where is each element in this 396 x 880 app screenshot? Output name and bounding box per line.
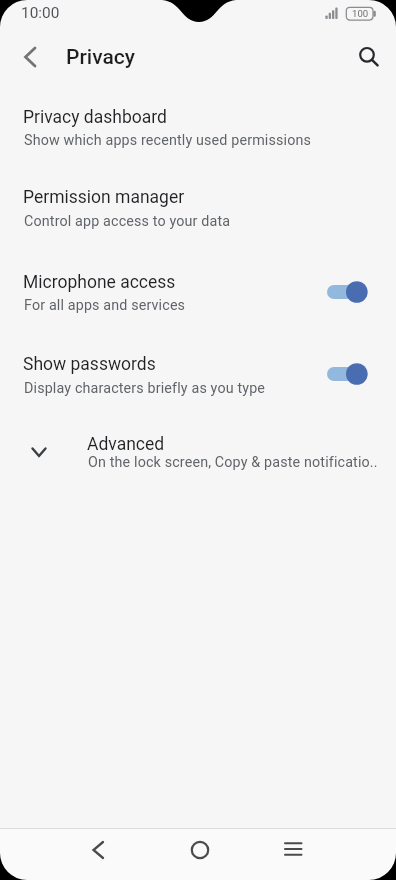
button[interactable] [0, 428, 396, 486]
staticText: Show which apps recently used permission… [24, 132, 312, 149]
button[interactable] [0, 180, 396, 264]
staticText: 10:00 [21, 4, 60, 22]
staticText: Show passwords [23, 354, 156, 375]
button[interactable] [12, 44, 48, 72]
button[interactable] [273, 832, 313, 872]
button[interactable] [78, 832, 118, 872]
button[interactable] [0, 98, 396, 180]
staticText: Privacy dashboard [23, 107, 167, 128]
button[interactable] [0, 264, 396, 346]
staticText: Microphone access [23, 272, 176, 293]
staticText: Control app access to your data [24, 213, 231, 230]
staticText: Display characters briefly as you type [24, 380, 266, 397]
button[interactable] [180, 832, 220, 872]
button[interactable] [327, 281, 368, 303]
button[interactable] [0, 346, 396, 428]
staticText: For all apps and services [24, 297, 186, 314]
staticText: 100 [352, 8, 369, 19]
button[interactable] [352, 42, 388, 74]
staticText: Permission manager [23, 187, 185, 208]
staticText: Privacy [66, 45, 136, 70]
staticText: On the lock screen, Copy & paste notific… [88, 454, 382, 471]
staticText: Advanced [87, 434, 165, 455]
button[interactable] [327, 363, 368, 385]
